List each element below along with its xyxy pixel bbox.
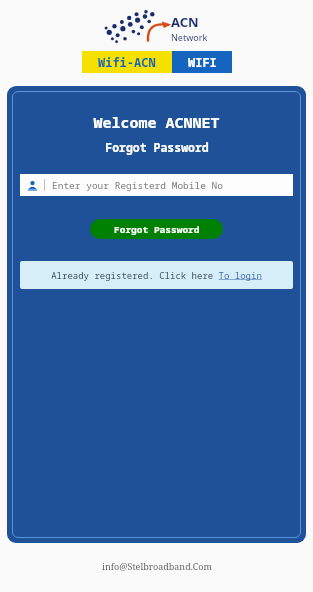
button[interactable]: Forgot Password [90, 219, 223, 239]
button[interactable]: User [20, 174, 293, 196]
staticText: WIFI [188, 54, 217, 70]
staticText: Forgot Password [114, 223, 200, 236]
staticText: Welcome ACNNET [93, 112, 220, 132]
staticText: Network [171, 31, 208, 43]
staticText: Already registered. Click here To login [51, 269, 262, 281]
staticText: Enter your Registerd Mobile No [52, 179, 224, 192]
staticText: Wifi-ACN [98, 54, 156, 70]
button[interactable]: Already registered. Click here To login [20, 261, 293, 289]
staticText: ACN [171, 13, 199, 31]
staticText: Forgot Password [105, 140, 209, 156]
staticText: info@Stelbroadband.Com [102, 560, 212, 572]
other: User [27, 180, 38, 191]
